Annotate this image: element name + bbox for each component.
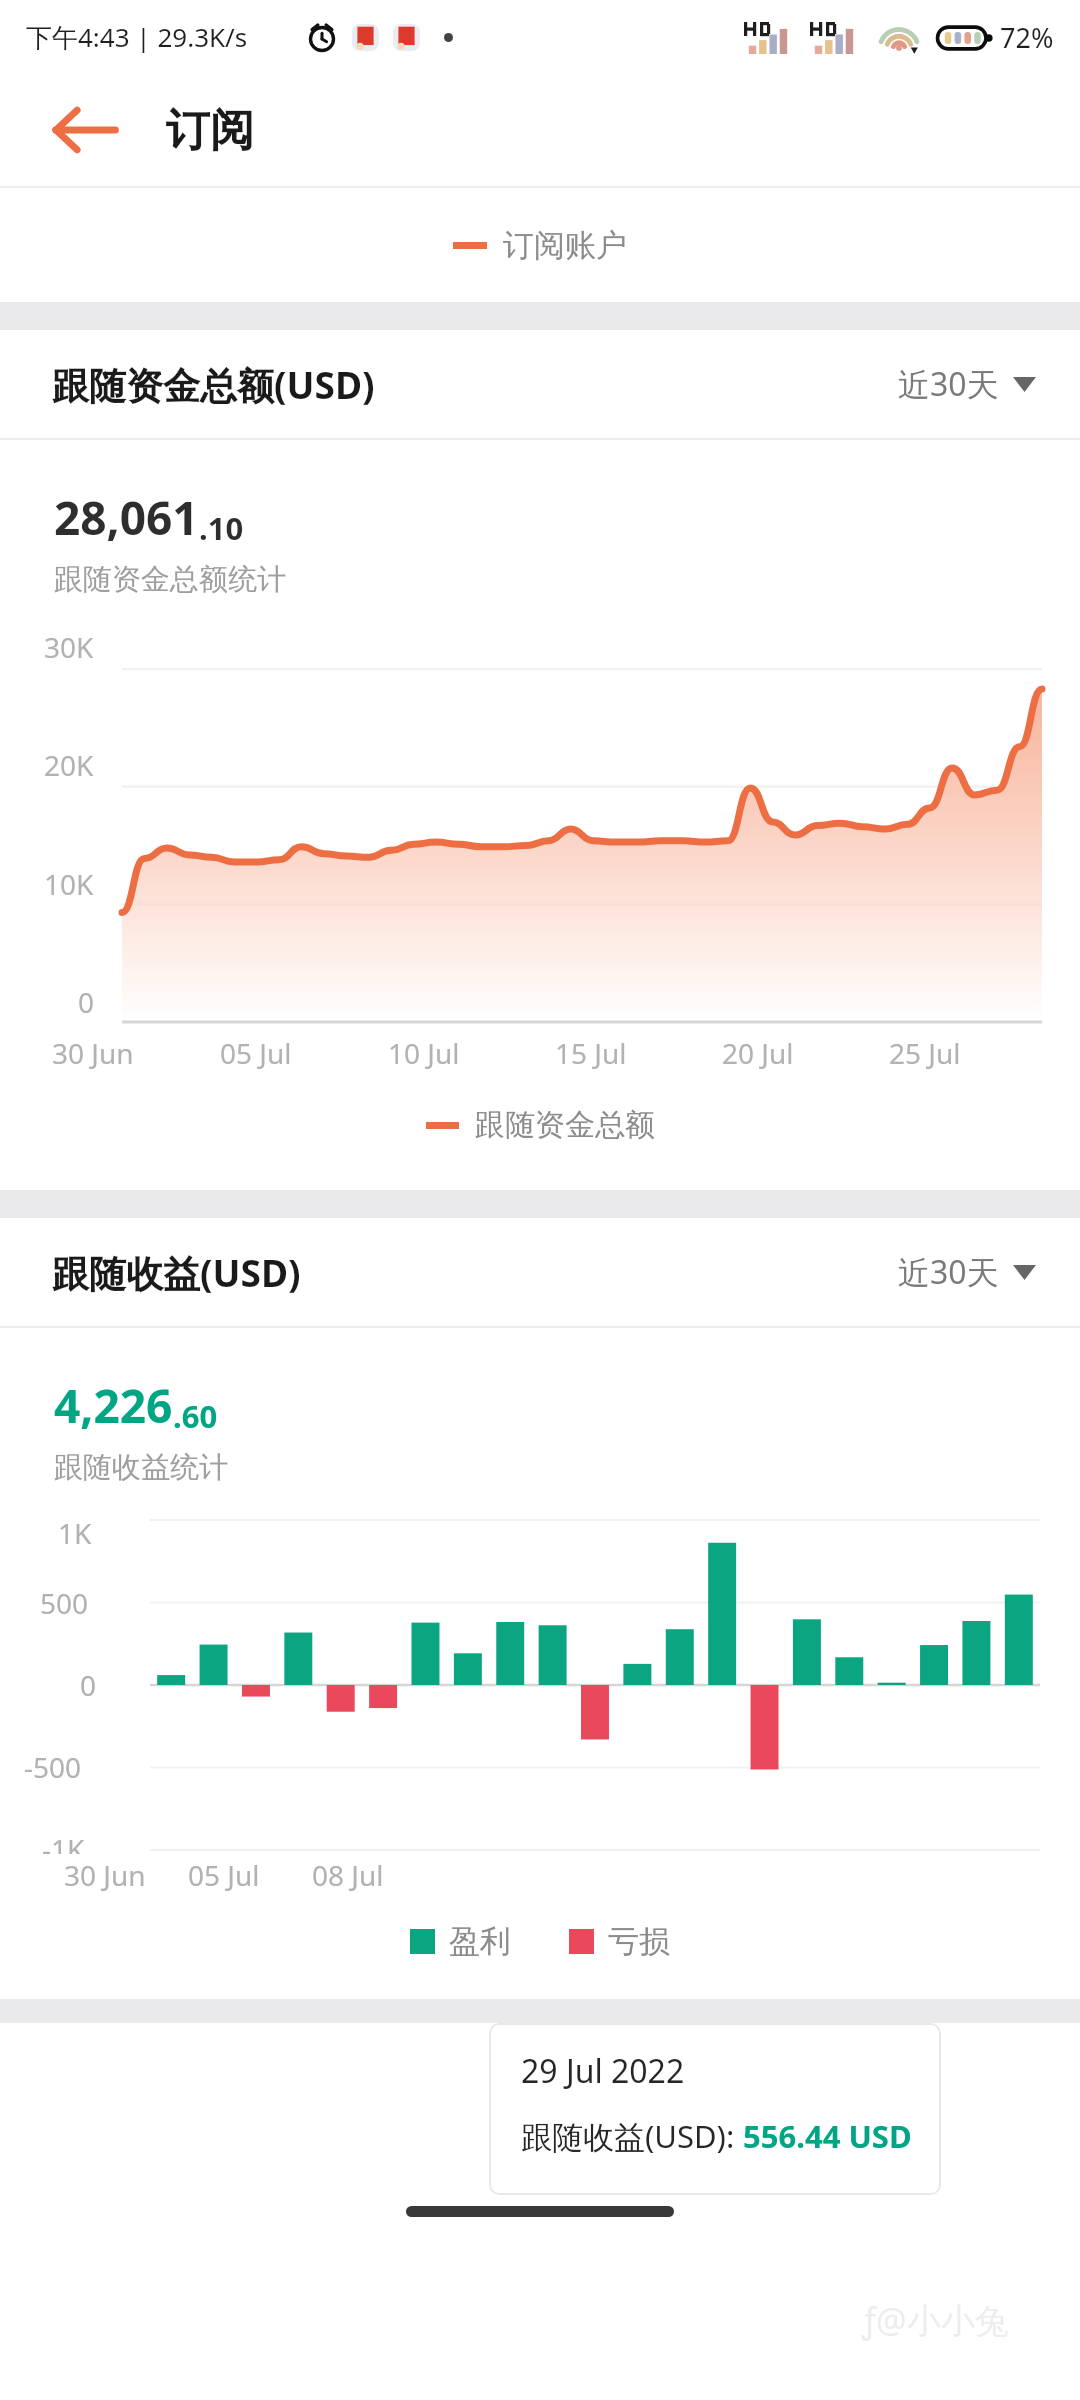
staticText: 跟随资金总额 xyxy=(475,1106,655,1144)
staticText: -1K xyxy=(42,1830,85,1854)
staticText: ƒ@小小兔 xyxy=(862,2297,1009,2343)
staticText: 0 xyxy=(78,983,95,1021)
button[interactable]: 近30天 xyxy=(898,362,1036,406)
staticText: 近30天 xyxy=(898,362,999,406)
staticText: -500 xyxy=(24,1748,82,1786)
staticText: 跟随资金总额统计 xyxy=(54,561,286,598)
staticText: 近30天 xyxy=(898,1250,999,1294)
staticText: 30 Jun xyxy=(52,1034,134,1072)
staticText: 500 xyxy=(40,1584,89,1622)
button[interactable]: 跟随资金总额 xyxy=(0,1106,1080,1144)
staticText: 1K xyxy=(58,1514,92,1552)
staticText: 556.44 USD xyxy=(743,2115,912,2157)
staticText: .10 xyxy=(199,507,244,549)
staticText: 25 Jul xyxy=(889,1034,961,1072)
staticText: 05 Jul xyxy=(188,1856,260,1894)
staticText: 20K xyxy=(44,746,94,784)
staticText: 72% xyxy=(1000,19,1054,56)
button[interactable]: 订阅账户 xyxy=(453,226,627,265)
staticText: 15 Jul xyxy=(555,1034,627,1072)
staticText: 0 xyxy=(80,1666,97,1704)
staticText: 跟随收益统计 xyxy=(54,1449,228,1486)
staticText: 05 Jul xyxy=(220,1034,292,1072)
button[interactable]: 近30天 xyxy=(898,1250,1036,1294)
staticText: 下午4:43 | 29.3K/s xyxy=(26,19,248,55)
button[interactable]: Back xyxy=(52,97,118,163)
staticText: 10K xyxy=(44,865,94,903)
staticText: .60 xyxy=(173,1395,218,1437)
staticText: 订阅账户 xyxy=(503,226,627,265)
staticText: 亏损 xyxy=(608,1922,670,1961)
staticText: 盈利 xyxy=(449,1922,511,1961)
staticText: 4,226 xyxy=(54,1374,173,1437)
button[interactable]: 亏损 xyxy=(569,1922,670,1961)
staticText: 29 Jul 2022 xyxy=(521,2049,685,2093)
staticText: 20 Jul xyxy=(722,1034,794,1072)
button[interactable]: 盈利 xyxy=(410,1922,511,1961)
staticText: 30 Jun xyxy=(64,1856,146,1894)
staticText: 28,061 xyxy=(54,486,199,549)
staticText: 跟随资金总额(USD) xyxy=(52,359,375,410)
staticText: 订阅 xyxy=(166,103,254,158)
staticText: 30K xyxy=(44,628,94,666)
staticText: 08 Jul xyxy=(312,1856,384,1894)
staticText: 跟随收益(USD) xyxy=(52,1247,301,1298)
staticText: 跟随收益(USD): xyxy=(521,2115,743,2157)
staticText: 10 Jul xyxy=(388,1034,460,1072)
